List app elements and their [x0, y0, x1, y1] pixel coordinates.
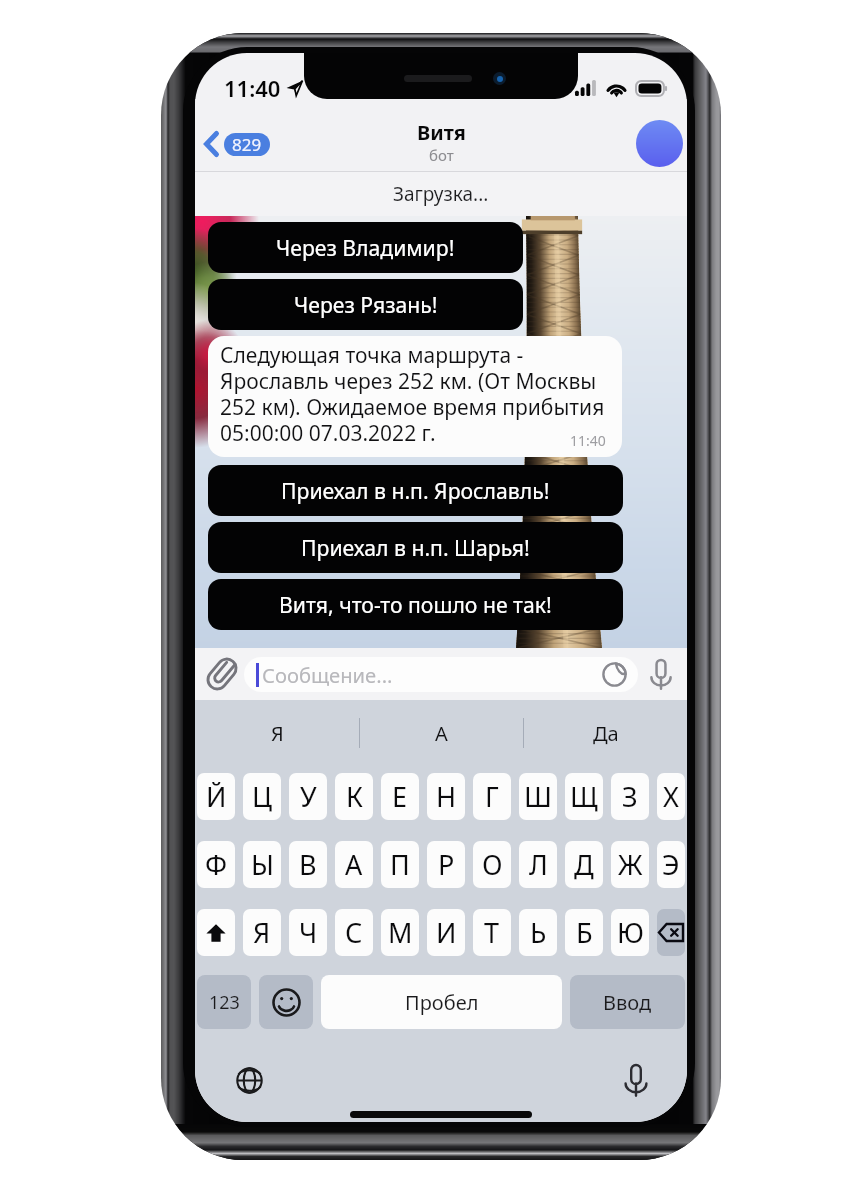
staticText: Ввод	[603, 989, 652, 1016]
button[interactable]: Й	[197, 773, 235, 820]
button[interactable]: Ь	[519, 909, 557, 956]
button[interactable]: Витя, что-то пошло не так!	[208, 579, 623, 630]
staticText: Х	[663, 778, 679, 815]
staticText: Я	[271, 720, 284, 747]
button[interactable]: Profile	[636, 120, 683, 167]
staticText: М	[388, 914, 413, 951]
staticText: Витя, что-то пошло не так!	[279, 590, 552, 619]
button[interactable]: Через Рязань!	[208, 279, 523, 330]
button[interactable]: Back	[204, 131, 270, 157]
staticText: 829	[232, 133, 262, 156]
staticText: Ш	[524, 778, 552, 815]
staticText: Ч	[299, 914, 318, 951]
button[interactable]: Приехал в н.п. Шарья!	[208, 522, 623, 573]
staticText: Щ	[570, 778, 598, 815]
button[interactable]: Shift	[197, 909, 235, 956]
staticText: Пробел	[405, 989, 479, 1016]
button[interactable]: П	[381, 841, 419, 888]
staticText: 11:40	[224, 73, 281, 103]
button[interactable]: Н	[427, 773, 465, 820]
button[interactable]: Ц	[243, 773, 281, 820]
button[interactable]: Ю	[611, 909, 649, 956]
button[interactable]: Я	[195, 700, 359, 766]
button[interactable]: Л	[519, 841, 557, 888]
staticText: Сообщение...	[262, 661, 393, 689]
button[interactable]: Ч	[289, 909, 327, 956]
button[interactable]: С	[335, 909, 373, 956]
button[interactable]: З	[611, 773, 649, 820]
staticText: Ф	[205, 846, 228, 883]
staticText: 11:40	[570, 431, 606, 450]
button[interactable]: 123	[197, 975, 251, 1029]
button[interactable]: Ы	[243, 841, 281, 888]
staticText: Ь	[530, 914, 547, 951]
staticText: Е	[392, 778, 408, 815]
button[interactable]: А	[360, 700, 523, 766]
staticText: В	[299, 846, 317, 883]
staticText: Н	[436, 778, 457, 815]
button[interactable]: В	[289, 841, 327, 888]
staticText: Г	[485, 778, 499, 815]
button[interactable]: Приехал в н.п. Ярославль!	[208, 465, 623, 516]
staticText: А	[435, 720, 448, 747]
staticText: Загрузка...	[393, 181, 489, 207]
staticText: У	[300, 778, 317, 815]
staticText: Ы	[251, 846, 274, 883]
button[interactable]: Да	[524, 700, 687, 766]
staticText: Э	[662, 846, 680, 883]
staticText: Т	[484, 914, 500, 951]
button[interactable]: Сообщение...	[244, 657, 638, 692]
button[interactable]: Ж	[611, 841, 649, 888]
button[interactable]: О	[473, 841, 511, 888]
staticText: Б	[576, 914, 593, 951]
staticText: Приехал в н.п. Шарья!	[301, 533, 530, 562]
other: Stickers	[602, 662, 627, 687]
staticText: Через Владимир!	[276, 233, 455, 262]
staticText: Ц	[252, 778, 272, 815]
button[interactable]: Attach file	[204, 656, 240, 692]
staticText: Ж	[618, 846, 643, 883]
button[interactable]: Voice message	[644, 657, 678, 691]
button[interactable]: Х	[657, 773, 685, 820]
staticText: Л	[529, 846, 548, 883]
staticText: К	[346, 778, 363, 815]
button[interactable]: Backspace	[657, 909, 685, 956]
button[interactable]: Б	[565, 909, 603, 956]
button[interactable]: М	[381, 909, 419, 956]
button[interactable]: У	[289, 773, 327, 820]
staticText: Через Рязань!	[294, 290, 438, 319]
staticText: бот	[429, 145, 454, 165]
staticText: И	[436, 914, 457, 951]
staticText: 123	[209, 990, 240, 1015]
button[interactable]: Р	[427, 841, 465, 888]
button[interactable]: А	[335, 841, 373, 888]
staticText: Р	[438, 846, 455, 883]
button[interactable]: Э	[657, 841, 685, 888]
staticText: О	[482, 846, 503, 883]
button[interactable]: Пробел	[321, 975, 562, 1029]
button[interactable]: К	[335, 773, 373, 820]
button[interactable]: Emoji	[259, 975, 313, 1029]
button[interactable]: Щ	[565, 773, 603, 820]
staticText: Ю	[617, 914, 644, 951]
staticText: Да	[593, 720, 619, 747]
staticText: Я	[253, 914, 271, 951]
button[interactable]: Ф	[197, 841, 235, 888]
staticText: С	[345, 914, 363, 951]
staticText: Й	[206, 778, 227, 815]
button[interactable]: Ш	[519, 773, 557, 820]
button[interactable]: И	[427, 909, 465, 956]
button[interactable]: Я	[243, 909, 281, 956]
staticText: А	[345, 846, 363, 883]
staticText: Витя	[417, 119, 466, 146]
button[interactable]: Т	[473, 909, 511, 956]
staticText: Следующая точка маршрута - Ярославль чер…	[220, 341, 614, 448]
button[interactable]: Ввод	[570, 975, 685, 1029]
button[interactable]: Г	[473, 773, 511, 820]
button[interactable]: Через Владимир!	[208, 222, 523, 273]
button[interactable]: Dictation	[619, 1063, 653, 1097]
button[interactable]: Change keyboard	[232, 1063, 266, 1097]
staticText: Д	[574, 846, 594, 883]
button[interactable]: Д	[565, 841, 603, 888]
button[interactable]: Е	[381, 773, 419, 820]
